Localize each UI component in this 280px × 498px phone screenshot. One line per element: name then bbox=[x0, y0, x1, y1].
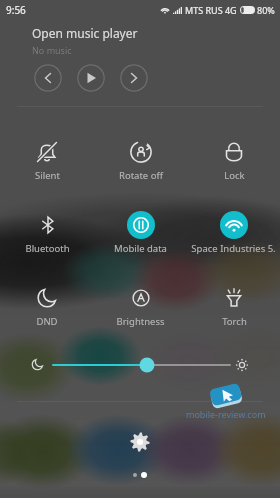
staticText: 80% bbox=[257, 4, 275, 16]
button[interactable]: Rotate off bbox=[94, 124, 187, 197]
staticText: 9:56 bbox=[6, 3, 26, 17]
button[interactable]: Silent bbox=[0, 124, 94, 197]
staticText: MTS RUS 4G bbox=[185, 4, 237, 16]
button[interactable]: Next bbox=[120, 64, 148, 92]
staticText: mobile-review.com bbox=[186, 408, 266, 420]
staticText: Brightness bbox=[116, 315, 165, 328]
button[interactable]: DND bbox=[0, 270, 94, 343]
staticText: Lock bbox=[224, 169, 245, 182]
button[interactable]: Torch bbox=[187, 270, 280, 343]
button[interactable] bbox=[0, 0, 280, 498]
button[interactable]: Mobile data bbox=[94, 197, 187, 270]
staticText: No music bbox=[32, 44, 72, 56]
button[interactable]: Brightness bbox=[94, 270, 187, 343]
staticText: Bluetooth bbox=[25, 242, 70, 255]
staticText: Mobile data bbox=[114, 242, 167, 255]
staticText: Rotate off bbox=[119, 169, 163, 182]
button[interactable]: Play bbox=[77, 64, 105, 92]
button[interactable]: Settings bbox=[128, 430, 152, 454]
staticText: DND bbox=[36, 315, 58, 328]
button[interactable]: Open music player bbox=[32, 25, 138, 41]
button[interactable]: Lock bbox=[187, 124, 280, 197]
staticText: Torch bbox=[222, 315, 247, 328]
staticText: Space Industries 5. bbox=[191, 242, 276, 255]
button[interactable]: Space Industries 5. bbox=[187, 197, 280, 270]
staticText: Silent bbox=[35, 169, 60, 182]
button[interactable]: Bluetooth bbox=[0, 197, 94, 270]
button[interactable]: Previous bbox=[34, 64, 62, 92]
